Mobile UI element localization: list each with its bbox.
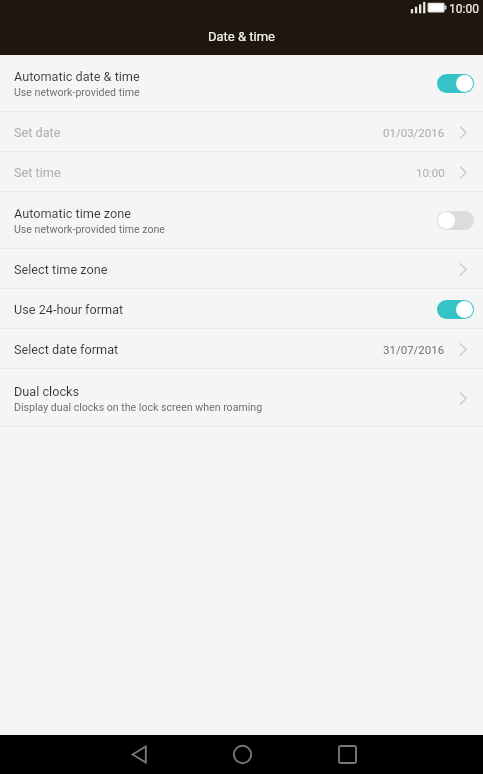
button[interactable]: Back [115,735,163,774]
button[interactable]: Toggle on [437,74,474,93]
staticText: Set date [14,125,61,140]
button[interactable]: Dual clocks [0,369,483,427]
button[interactable]: Automatic time zone [0,192,483,249]
button[interactable]: Home [218,735,266,774]
button[interactable]: Select time zone [0,249,483,289]
staticText: Use network-provided time [14,86,140,98]
button[interactable]: Select date format [0,329,483,369]
staticText: Select date format [14,342,119,357]
button[interactable]: Toggle off [437,211,474,230]
staticText: Automatic date & time [14,69,140,84]
button[interactable]: Use 24-hour format [0,289,483,329]
staticText: Date & time [208,29,275,44]
staticText: Use 24-hour format [14,302,124,317]
staticText: Dual clocks [14,384,80,399]
staticText: Set time [14,165,61,180]
staticText: 01/03/2016 [383,126,445,139]
staticText: 10:00 [416,166,445,179]
staticText: Select time zone [14,262,108,277]
staticText: Use network-provided time zone [14,223,165,235]
button[interactable]: Toggle on [437,300,474,319]
button[interactable]: Set time [0,152,483,192]
staticText: 10:00 [449,2,479,16]
staticText: 31/07/2016 [383,343,445,356]
staticText: Display dual clocks on the lock screen w… [14,401,263,413]
button[interactable]: Automatic date & time [0,55,483,112]
staticText: Automatic time zone [14,206,131,221]
button[interactable]: Recent apps [323,735,371,774]
button[interactable]: Set date [0,112,483,152]
